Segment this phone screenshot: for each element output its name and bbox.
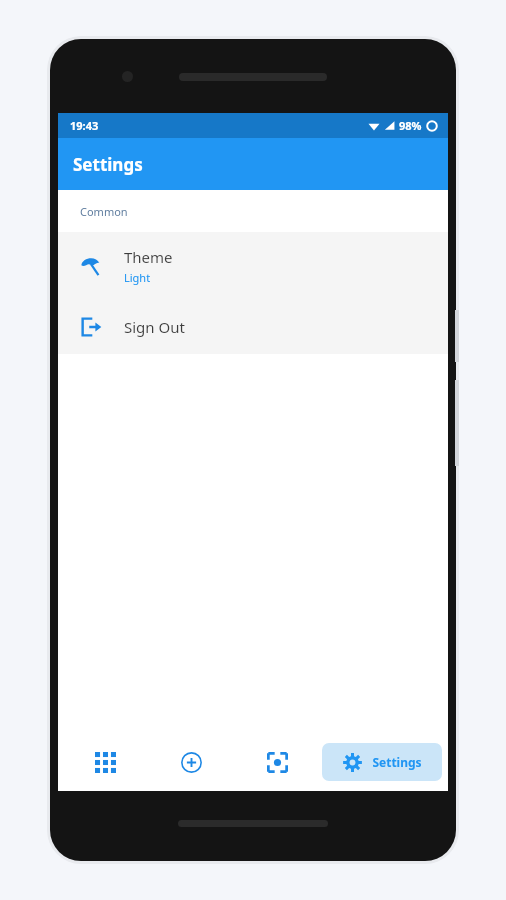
button[interactable]: Scan xyxy=(234,733,320,791)
staticText: Theme xyxy=(124,247,173,267)
staticText: 98% xyxy=(399,118,422,133)
button[interactable]: Add xyxy=(148,733,234,791)
button[interactable]: Sign Out xyxy=(58,299,448,354)
button[interactable]: Apps xyxy=(62,733,148,791)
staticText: Light xyxy=(124,270,151,285)
button[interactable]: Settings xyxy=(322,743,442,781)
staticText: Settings xyxy=(73,153,143,176)
button[interactable]: Theme xyxy=(58,232,448,299)
staticText: Sign Out xyxy=(124,317,185,337)
staticText: Common xyxy=(80,204,128,219)
staticText: Settings xyxy=(372,754,422,770)
staticText: 19:43 xyxy=(70,118,99,133)
